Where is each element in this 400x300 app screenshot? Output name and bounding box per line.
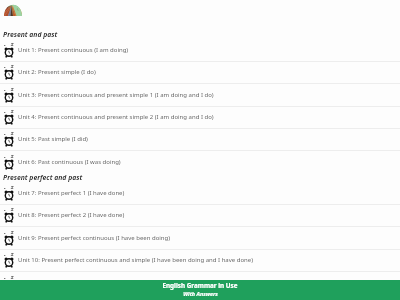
button[interactable]: Unit 4: Present continuous and present s… (0, 107, 400, 129)
button[interactable]: Unit 9: Present perfect continuous (I ha… (0, 228, 400, 250)
staticText: Unit 7: Present perfect 1 (I have done) (18, 189, 125, 197)
button[interactable]: Unit 6: Past continuous (I was doing) (0, 152, 400, 174)
staticText: Unit 11: How long have you (been) ...? (18, 279, 124, 287)
staticText: Present perfect and past (3, 173, 83, 182)
button[interactable]: Unit 2: Present simple (I do) (0, 62, 400, 84)
button[interactable]: English Grammar in Use (0, 280, 400, 300)
button[interactable]: Unit 11: How long have you (been) ...? (0, 273, 400, 295)
staticText: Unit 1: Present continuous (I am doing) (18, 46, 129, 54)
button[interactable]: Unit 8: Present perfect 2 (I have done) (0, 205, 400, 227)
staticText: Unit 5: Past simple (I did) (18, 135, 88, 143)
staticText: Unit 4: Present continuous and present s… (18, 113, 214, 121)
other: English Grammar in Use (4, 4, 22, 16)
staticText: English Grammar in Use (162, 281, 238, 290)
staticText: Unit 9: Present perfect continuous (I ha… (18, 234, 171, 242)
staticText: Unit 3: Present continuous and present s… (18, 91, 214, 99)
staticText: Unit 8: Present perfect 2 (I have done) (18, 211, 125, 219)
button[interactable]: Unit 5: Past simple (I did) (0, 129, 400, 151)
button[interactable]: Unit 7: Present perfect 1 (I have done) (0, 183, 400, 205)
staticText: Unit 2: Present simple (I do) (18, 68, 96, 76)
button[interactable]: Unit 3: Present continuous and present s… (0, 85, 400, 107)
button[interactable]: Unit 10: Present perfect continuous and … (0, 250, 400, 272)
button[interactable]: Unit 1: Present continuous (I am doing) (0, 40, 400, 62)
staticText: Unit 6: Past continuous (I was doing) (18, 158, 121, 166)
staticText: With Answers (183, 290, 218, 297)
staticText: Unit 10: Present perfect continuous and … (18, 256, 253, 264)
staticText: Present and past (3, 30, 58, 39)
